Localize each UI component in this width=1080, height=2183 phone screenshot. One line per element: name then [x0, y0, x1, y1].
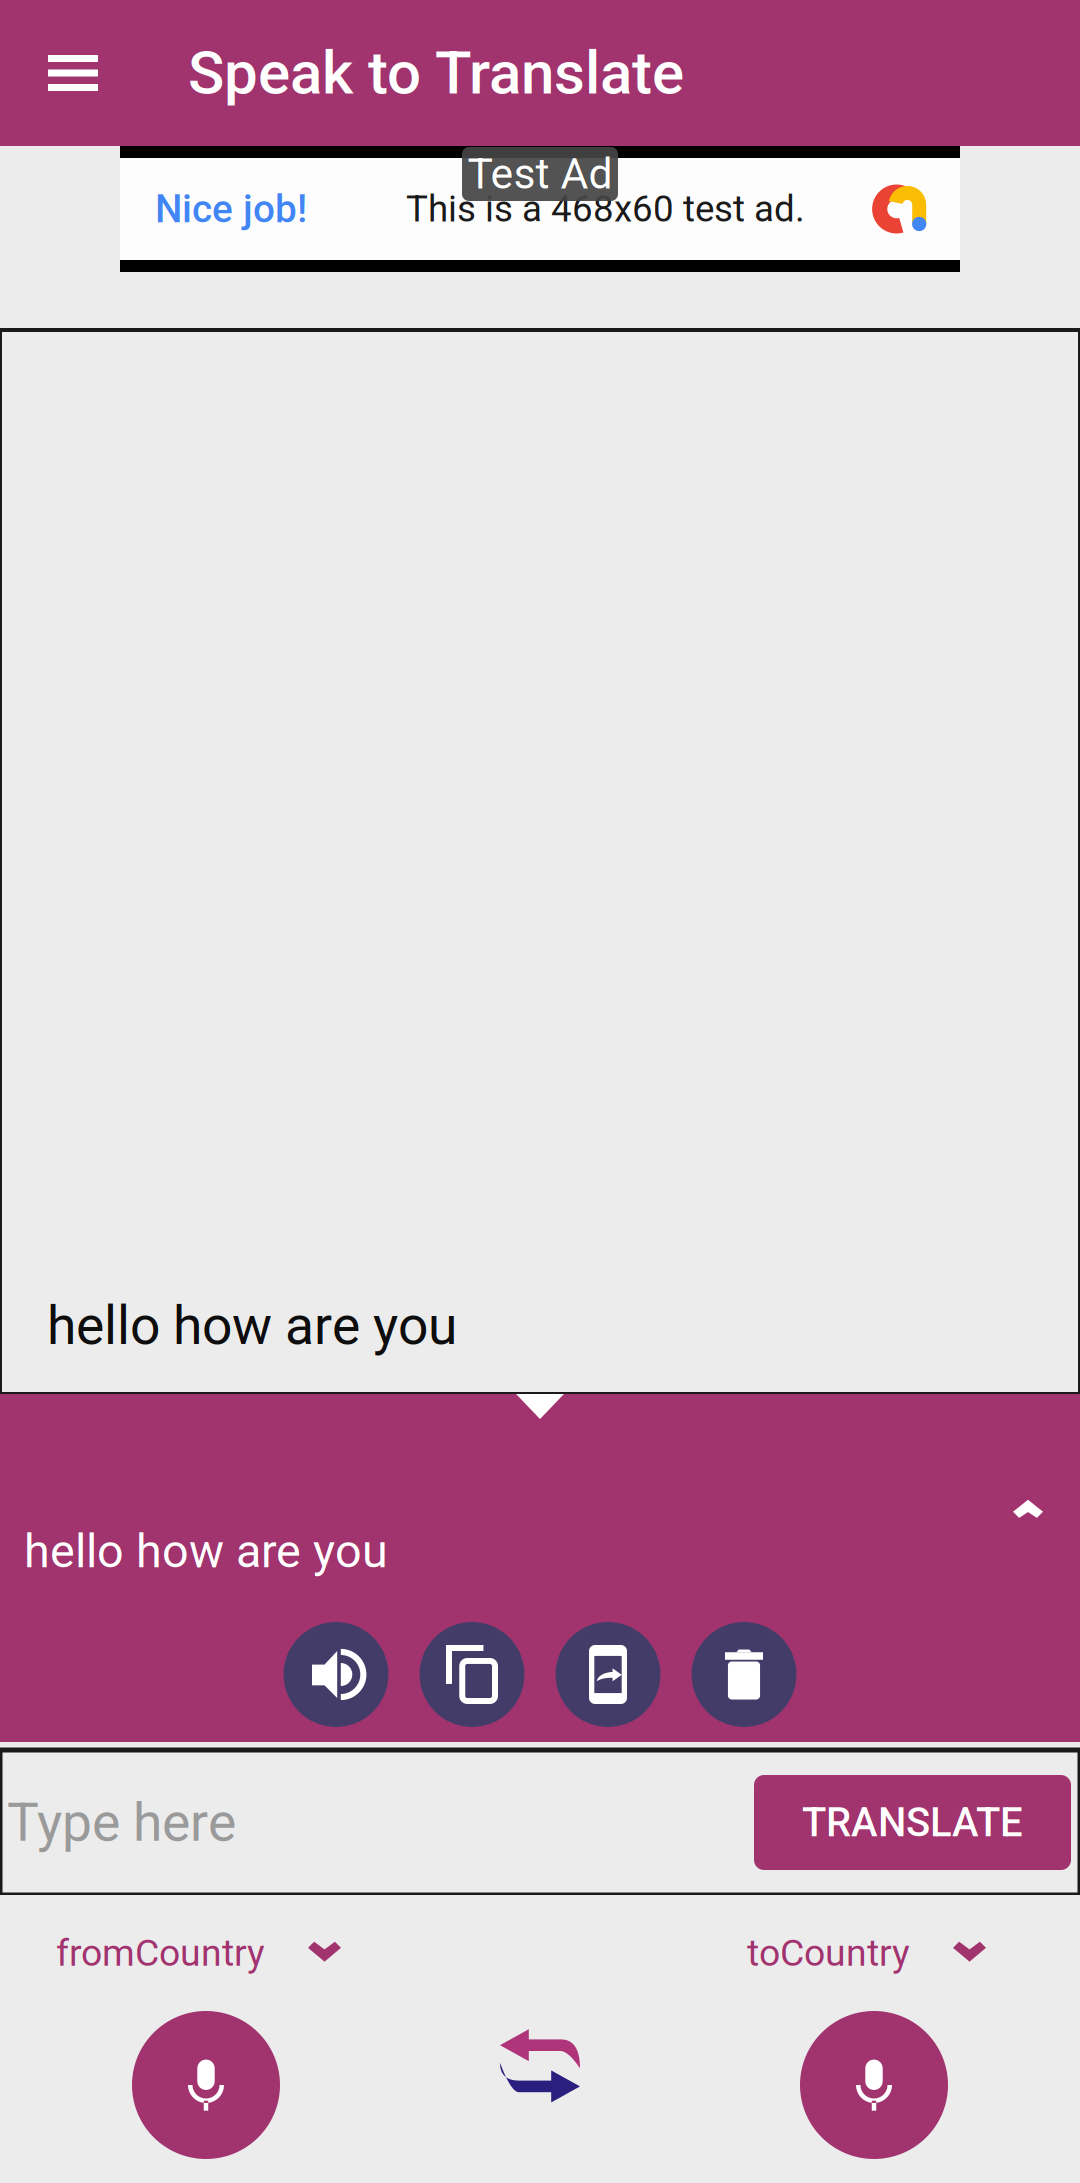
staticText: toCountry — [747, 1931, 910, 1975]
staticText: This is a 468x60 test ad. — [406, 187, 805, 230]
staticText: hello how are you — [24, 1524, 388, 1579]
button[interactable]: Copy — [419, 1622, 524, 1727]
staticText: TRANSLATE — [802, 1799, 1023, 1846]
button[interactable]: Speak target language — [800, 2011, 948, 2159]
button[interactable]: Menu — [0, 0, 146, 146]
staticText: Nice job! — [155, 186, 307, 232]
button[interactable]: Collapse — [986, 1476, 1070, 1544]
button[interactable]: Share — [555, 1622, 660, 1727]
staticText: fromCountry — [56, 1931, 265, 1975]
button[interactable]: fromCountry — [0, 1917, 341, 1989]
button[interactable]: toCountry — [747, 1917, 1080, 1989]
staticText: Type here — [7, 1791, 236, 1854]
staticText: Test Ad — [467, 149, 612, 199]
button[interactable]: Swap languages — [482, 2026, 598, 2144]
staticText: hello how are you — [47, 1294, 457, 1357]
button[interactable]: Delete — [691, 1622, 796, 1727]
button[interactable]: Speak source language — [132, 2011, 280, 2159]
staticText: Speak to Translate — [188, 38, 684, 108]
button[interactable]: TRANSLATE — [754, 1775, 1071, 1870]
button[interactable]: Speak aloud — [283, 1622, 388, 1727]
